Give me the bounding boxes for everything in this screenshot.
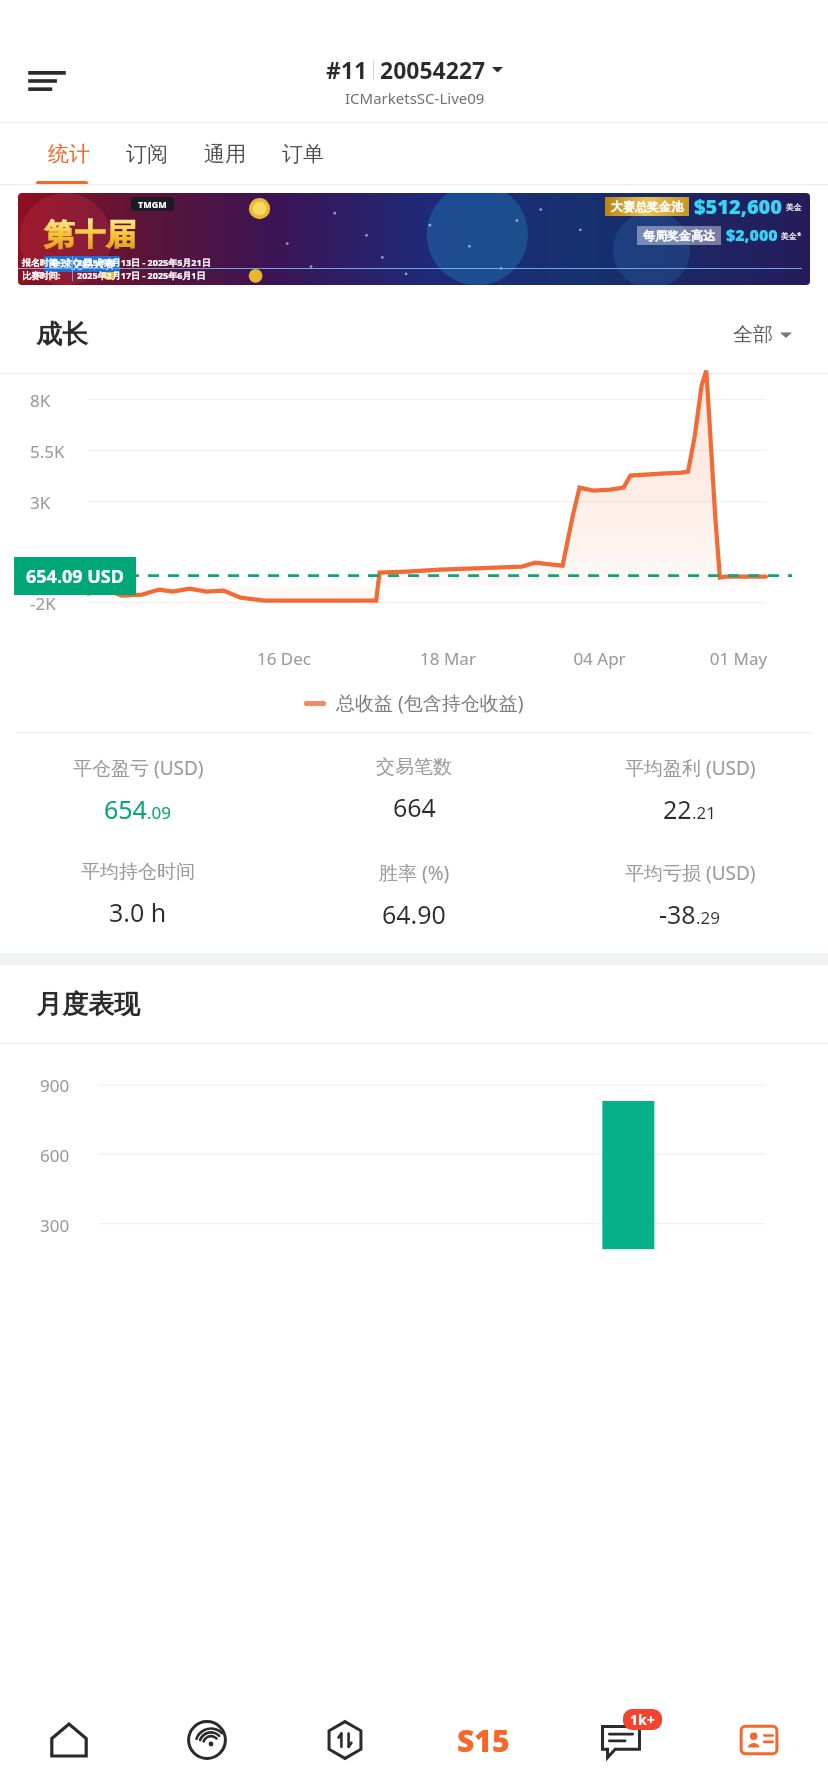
staticText: 300 xyxy=(40,1214,70,1234)
button[interactable]: 平均盈利 (USD) xyxy=(552,755,828,826)
staticText: 平均亏损 (USD) xyxy=(625,860,756,886)
button[interactable]: 平均亏损 (USD) xyxy=(552,860,828,931)
staticText: 2025年2月13日 - 2025年5月21日 xyxy=(77,256,211,268)
staticText: 16 Dec xyxy=(202,647,366,670)
staticText: 全部 xyxy=(733,322,773,347)
staticText: 01 May xyxy=(669,647,808,670)
staticText: 报名时间: xyxy=(22,256,61,268)
staticText: 订阅 xyxy=(126,141,168,167)
staticText: 64.90 xyxy=(382,897,446,931)
staticText: 平均持仓时间 xyxy=(81,860,195,884)
staticText: 美金* xyxy=(781,230,802,241)
staticText: .21 xyxy=(692,801,717,824)
staticText: 654 xyxy=(104,792,147,826)
staticText: 届 xyxy=(106,216,136,254)
button[interactable]: Trade xyxy=(276,1688,414,1792)
staticText: 订单 xyxy=(282,141,324,167)
staticText: 20054227 xyxy=(380,54,486,85)
button[interactable]: 交易笔数 xyxy=(276,755,552,824)
staticText: 交易笔数 xyxy=(376,755,452,779)
staticText: 平均盈利 (USD) xyxy=(625,755,756,781)
staticText: -2K xyxy=(30,592,56,615)
staticText: 2025年2月17日 - 2025年6月1日 xyxy=(77,269,206,281)
staticText: -38 xyxy=(659,897,696,931)
staticText: 比赛时间: xyxy=(22,269,61,281)
staticText: 统计 xyxy=(48,141,90,167)
staticText: 第 xyxy=(44,216,74,254)
staticText: $512,600 xyxy=(694,193,783,220)
button[interactable]: S15 xyxy=(414,1688,552,1792)
staticText: 3.0 h xyxy=(109,895,167,929)
button[interactable]: Menu xyxy=(20,54,74,108)
staticText: .09 xyxy=(147,801,172,824)
staticText: 每周奖金高达 xyxy=(643,228,715,243)
staticText: .29 xyxy=(696,906,721,929)
staticText: 十 xyxy=(75,216,105,254)
button[interactable]: Signals xyxy=(138,1688,276,1792)
staticText: S15 xyxy=(457,1720,510,1761)
staticText: 3K xyxy=(30,491,51,514)
button[interactable]: TMGM trading contest banner xyxy=(18,193,810,285)
staticText: 美金 xyxy=(786,202,802,212)
staticText: 664 xyxy=(393,790,436,824)
button[interactable]: 通用 xyxy=(190,123,260,185)
staticText: 1k+ xyxy=(630,1710,655,1729)
staticText: 18 Mar xyxy=(366,647,530,670)
staticText: 全球交易大赛 xyxy=(49,257,115,271)
staticText: ICMarketsSC-Live09 xyxy=(345,88,485,108)
staticText: 04 Apr xyxy=(530,647,669,670)
button[interactable]: 胜率 (%) xyxy=(276,860,552,931)
button[interactable]: 平仓盈亏 (USD) xyxy=(0,755,276,826)
staticText: 600 xyxy=(40,1144,70,1167)
staticText: 成长 xyxy=(36,318,88,351)
staticText: 8K xyxy=(30,389,51,412)
button[interactable]: Home xyxy=(0,1688,138,1792)
staticText: 月度表现 xyxy=(36,988,140,1021)
staticText: #11 xyxy=(326,54,368,85)
button[interactable]: 统计 xyxy=(34,123,104,185)
button[interactable]: #11 xyxy=(326,54,503,108)
staticText: 平仓盈亏 (USD) xyxy=(73,755,204,781)
staticText: $2,000 xyxy=(726,224,778,246)
staticText: 通用 xyxy=(204,141,246,167)
staticText: 900 xyxy=(40,1074,70,1097)
staticText: 胜率 (%) xyxy=(379,860,450,886)
button[interactable]: 订阅 xyxy=(112,123,182,185)
staticText: 654.09 USD xyxy=(26,564,124,589)
button[interactable]: 平均持仓时间 xyxy=(0,860,276,929)
staticText: 22 xyxy=(663,792,692,826)
staticText: TMGM xyxy=(138,198,167,210)
button[interactable]: 订单 xyxy=(268,123,338,185)
staticText: 总收益 (包含持仓收益) xyxy=(336,690,524,716)
button[interactable]: Profile xyxy=(690,1688,828,1792)
staticText: 5.5K xyxy=(30,440,65,463)
staticText: 大赛总奖金池 xyxy=(611,199,683,214)
button[interactable]: 全部 xyxy=(733,322,792,347)
button[interactable]: Messages xyxy=(552,1688,690,1792)
